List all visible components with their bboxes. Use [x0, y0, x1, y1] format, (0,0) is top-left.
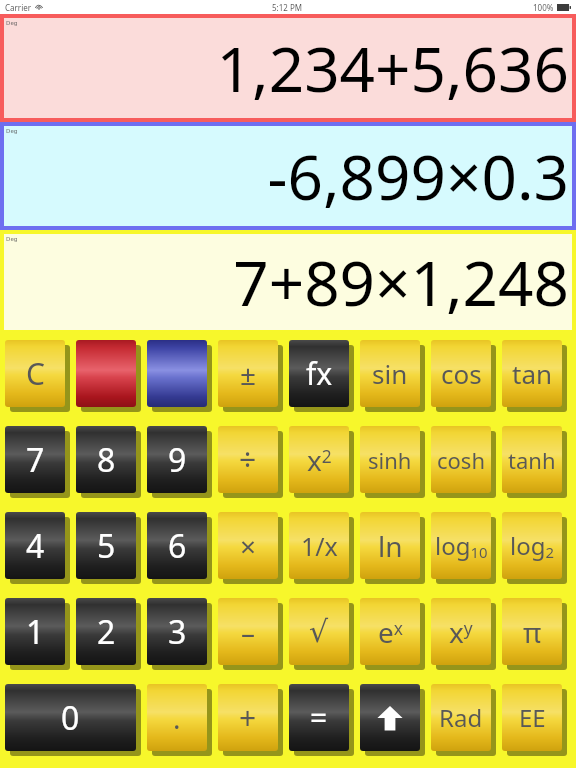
staticText: ln [378, 527, 403, 565]
staticText: 5 [97, 524, 116, 568]
staticText: tanh [508, 445, 556, 475]
button[interactable]: EE [502, 684, 562, 751]
staticText: π [523, 613, 542, 651]
button[interactable]: ex [360, 598, 420, 665]
button[interactable]: Memory red [76, 340, 136, 407]
button[interactable]: 7 [5, 426, 65, 493]
staticText: fx [306, 353, 333, 394]
staticText: 5:12 PM [272, 2, 303, 13]
button[interactable]: √ [289, 598, 349, 665]
button[interactable]: x2 [289, 426, 349, 493]
staticText: Rad [439, 701, 483, 734]
button[interactable]: ln [360, 512, 420, 579]
staticText: xy [449, 613, 473, 651]
staticText: EE [519, 701, 546, 734]
staticText: log10 [435, 529, 488, 563]
staticText: 1/x [301, 529, 338, 563]
staticText: cosh [437, 445, 486, 475]
staticText: 7+89×1,248 [4, 240, 569, 324]
button[interactable]: 5 [76, 512, 136, 579]
staticText: 3 [168, 610, 187, 654]
button[interactable]: ± [218, 340, 278, 407]
button[interactable]: tan [502, 340, 562, 407]
button[interactable]: π [502, 598, 562, 665]
staticText: -6,899×0.3 [4, 134, 569, 218]
button[interactable]: 0 [5, 684, 136, 751]
staticText: 1,234+5,636 [4, 26, 569, 110]
button[interactable]: sinh [360, 426, 420, 493]
staticText: + [239, 697, 257, 738]
staticText: x2 [307, 441, 332, 479]
staticText: 7 [26, 438, 45, 482]
staticText: Deg [6, 235, 18, 243]
button[interactable]: = [289, 684, 349, 751]
button[interactable]: ÷ [218, 426, 278, 493]
staticText: Carrier [5, 2, 32, 13]
button[interactable]: Memory blue [147, 340, 207, 407]
button[interactable]: 1 [5, 598, 65, 665]
button[interactable]: Rad [431, 684, 491, 751]
staticText: 9 [168, 438, 187, 482]
button[interactable]: – [218, 598, 278, 665]
staticText: × [240, 527, 257, 565]
staticText: 2 [97, 610, 116, 654]
staticText: Deg [6, 127, 18, 135]
button[interactable]: cosh [431, 426, 491, 493]
button[interactable]: sin [360, 340, 420, 407]
button[interactable]: × [218, 512, 278, 579]
staticText: Deg [6, 19, 18, 27]
button[interactable]: tanh [502, 426, 562, 493]
staticText: = [310, 697, 328, 738]
staticText: ÷ [239, 439, 257, 480]
staticText: 0 [61, 696, 80, 740]
button[interactable]: 1/x [289, 512, 349, 579]
staticText: sinh [368, 445, 412, 475]
staticText: log2 [510, 529, 554, 563]
button[interactable]: 9 [147, 426, 207, 493]
staticText: √ [309, 614, 329, 649]
staticText: 4 [26, 524, 45, 568]
button[interactable]: 6 [147, 512, 207, 579]
button[interactable]: . [147, 684, 207, 751]
staticText: ± [240, 355, 257, 393]
button[interactable]: log10 [431, 512, 491, 579]
staticText: tan [512, 356, 553, 391]
button[interactable]: 8 [76, 426, 136, 493]
button[interactable]: xy [431, 598, 491, 665]
staticText: 100% [533, 2, 554, 13]
button[interactable]: 4 [5, 512, 65, 579]
staticText: C [26, 353, 45, 394]
staticText: . [173, 699, 181, 737]
staticText: 6 [168, 524, 187, 568]
button[interactable]: + [218, 684, 278, 751]
button[interactable]: 3 [147, 598, 207, 665]
staticText: cos [441, 356, 482, 391]
button[interactable]: C [5, 340, 65, 407]
staticText: 8 [97, 438, 116, 482]
staticText: ex [378, 613, 403, 651]
button[interactable]: fx [289, 340, 349, 407]
button[interactable]: Shift up [360, 684, 420, 751]
button[interactable]: cos [431, 340, 491, 407]
button[interactable]: 2 [76, 598, 136, 665]
button[interactable]: log2 [502, 512, 562, 579]
staticText: – [241, 613, 256, 651]
staticText: sin [372, 356, 408, 391]
staticText: 1 [26, 610, 45, 654]
